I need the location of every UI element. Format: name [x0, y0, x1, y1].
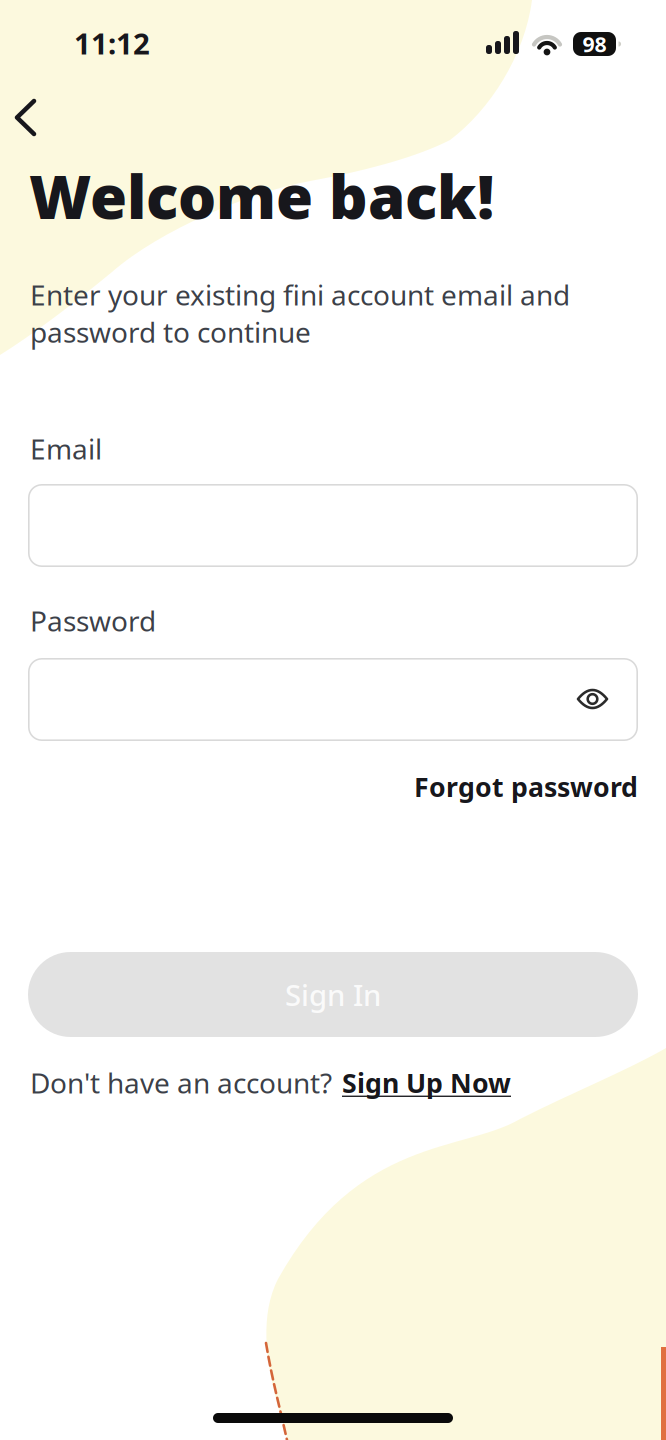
staticText: Email: [30, 430, 102, 467]
staticText: Welcome back!: [29, 156, 494, 236]
staticText: Don't have an account?: [30, 1064, 332, 1101]
button[interactable]: [10, 93, 58, 141]
staticText: Enter your existing fini account email a…: [30, 276, 570, 350]
staticText: Sign In: [285, 975, 381, 1014]
staticText: Password: [30, 602, 156, 639]
staticText: 11:12: [74, 23, 150, 62]
button[interactable]: [28, 658, 638, 741]
button[interactable]: Sign In: [28, 952, 638, 1037]
staticText: 98: [582, 30, 606, 58]
staticText: Forgot password: [414, 769, 638, 804]
button[interactable]: [28, 484, 638, 567]
button[interactable]: Forgot password: [414, 769, 638, 804]
staticText: Sign Up Now: [342, 1065, 511, 1100]
button[interactable]: Sign Up Now: [342, 1065, 511, 1100]
